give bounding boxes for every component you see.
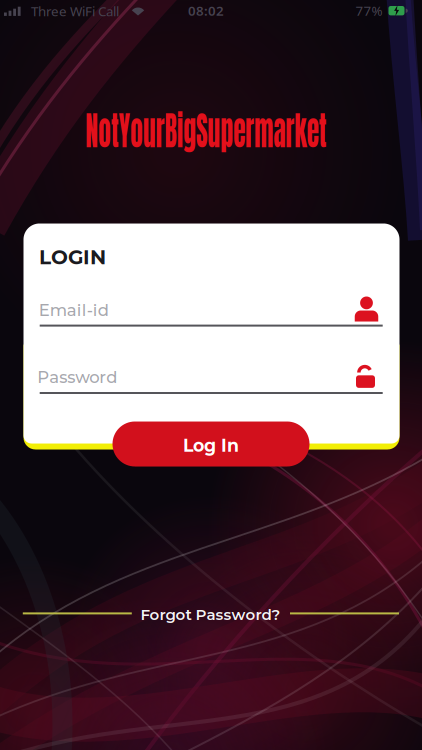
staticText: LOGIN bbox=[39, 245, 106, 269]
staticText: NotYourBigSupermarket bbox=[17, 101, 394, 160]
button[interactable]: Email-id bbox=[23, 263, 399, 333]
staticText: Forgot Password? bbox=[140, 605, 280, 624]
staticText: Password bbox=[37, 367, 117, 387]
button[interactable]: Log In bbox=[112, 421, 309, 466]
button[interactable]: Forgot Password? bbox=[140, 605, 280, 624]
button[interactable]: Password bbox=[23, 334, 399, 404]
staticText: 77% bbox=[355, 2, 382, 19]
staticText: 08:02 bbox=[188, 2, 224, 19]
staticText: Email-id bbox=[39, 300, 109, 320]
staticText: Three WiFi Call bbox=[31, 2, 119, 20]
staticText: Log In bbox=[183, 435, 239, 456]
